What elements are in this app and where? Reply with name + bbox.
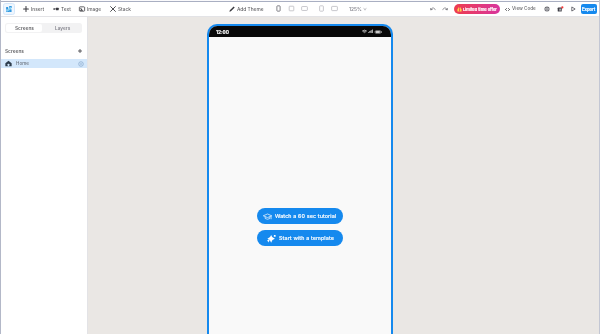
button[interactable]: Notifications <box>555 4 565 14</box>
button[interactable]: App logo <box>3 3 15 15</box>
button[interactable]: Undo <box>428 4 438 14</box>
button[interactable]: Add Theme <box>228 4 265 14</box>
button[interactable]: Device size 5 <box>328 2 341 15</box>
staticText: Add Theme <box>237 6 264 12</box>
button[interactable]: Device size 1 <box>272 2 285 15</box>
staticText: 125% <box>349 6 362 12</box>
button[interactable]: 125% <box>348 4 368 14</box>
button[interactable]: Start with a template <box>257 230 343 246</box>
button[interactable]: Home <box>0 59 88 68</box>
button[interactable]: Layers <box>43 23 82 33</box>
staticText: Stack <box>118 6 131 12</box>
button[interactable]: Limited time offer <box>454 4 500 14</box>
staticText: Image <box>87 6 102 12</box>
button[interactable]: Watch a 60 sec tutorial <box>257 208 343 224</box>
button[interactable]: Insert <box>22 4 46 14</box>
button[interactable]: Text <box>52 4 72 14</box>
staticText: Home <box>16 61 29 67</box>
button[interactable]: View Code <box>504 4 537 14</box>
staticText: Watch a 60 sec tutorial <box>275 213 337 220</box>
staticText: Text <box>61 6 71 12</box>
button[interactable]: Device size 2 <box>285 2 298 15</box>
button[interactable]: Stack <box>109 4 132 14</box>
staticText: Screens <box>5 48 24 54</box>
staticText: Insert <box>31 6 45 12</box>
button[interactable]: Preview <box>568 4 578 14</box>
button[interactable]: Device size 3 <box>298 2 311 15</box>
staticText: Screens <box>15 25 34 31</box>
button[interactable]: Device size 4 <box>315 2 328 15</box>
button[interactable]: Export <box>581 4 597 14</box>
staticText: View Code <box>512 6 536 12</box>
button[interactable]: Publish <box>542 4 552 14</box>
staticText: Limited time offer <box>463 7 497 12</box>
staticText: 12:00 <box>216 29 229 35</box>
button[interactable]: Screens <box>6 24 42 32</box>
staticText: Layers <box>55 25 71 31</box>
button[interactable]: Image <box>78 4 103 14</box>
button[interactable]: Add screen <box>76 47 84 55</box>
staticText: Start with a template <box>279 235 334 242</box>
button[interactable]: Redo <box>440 4 450 14</box>
staticText: Export <box>582 7 596 12</box>
